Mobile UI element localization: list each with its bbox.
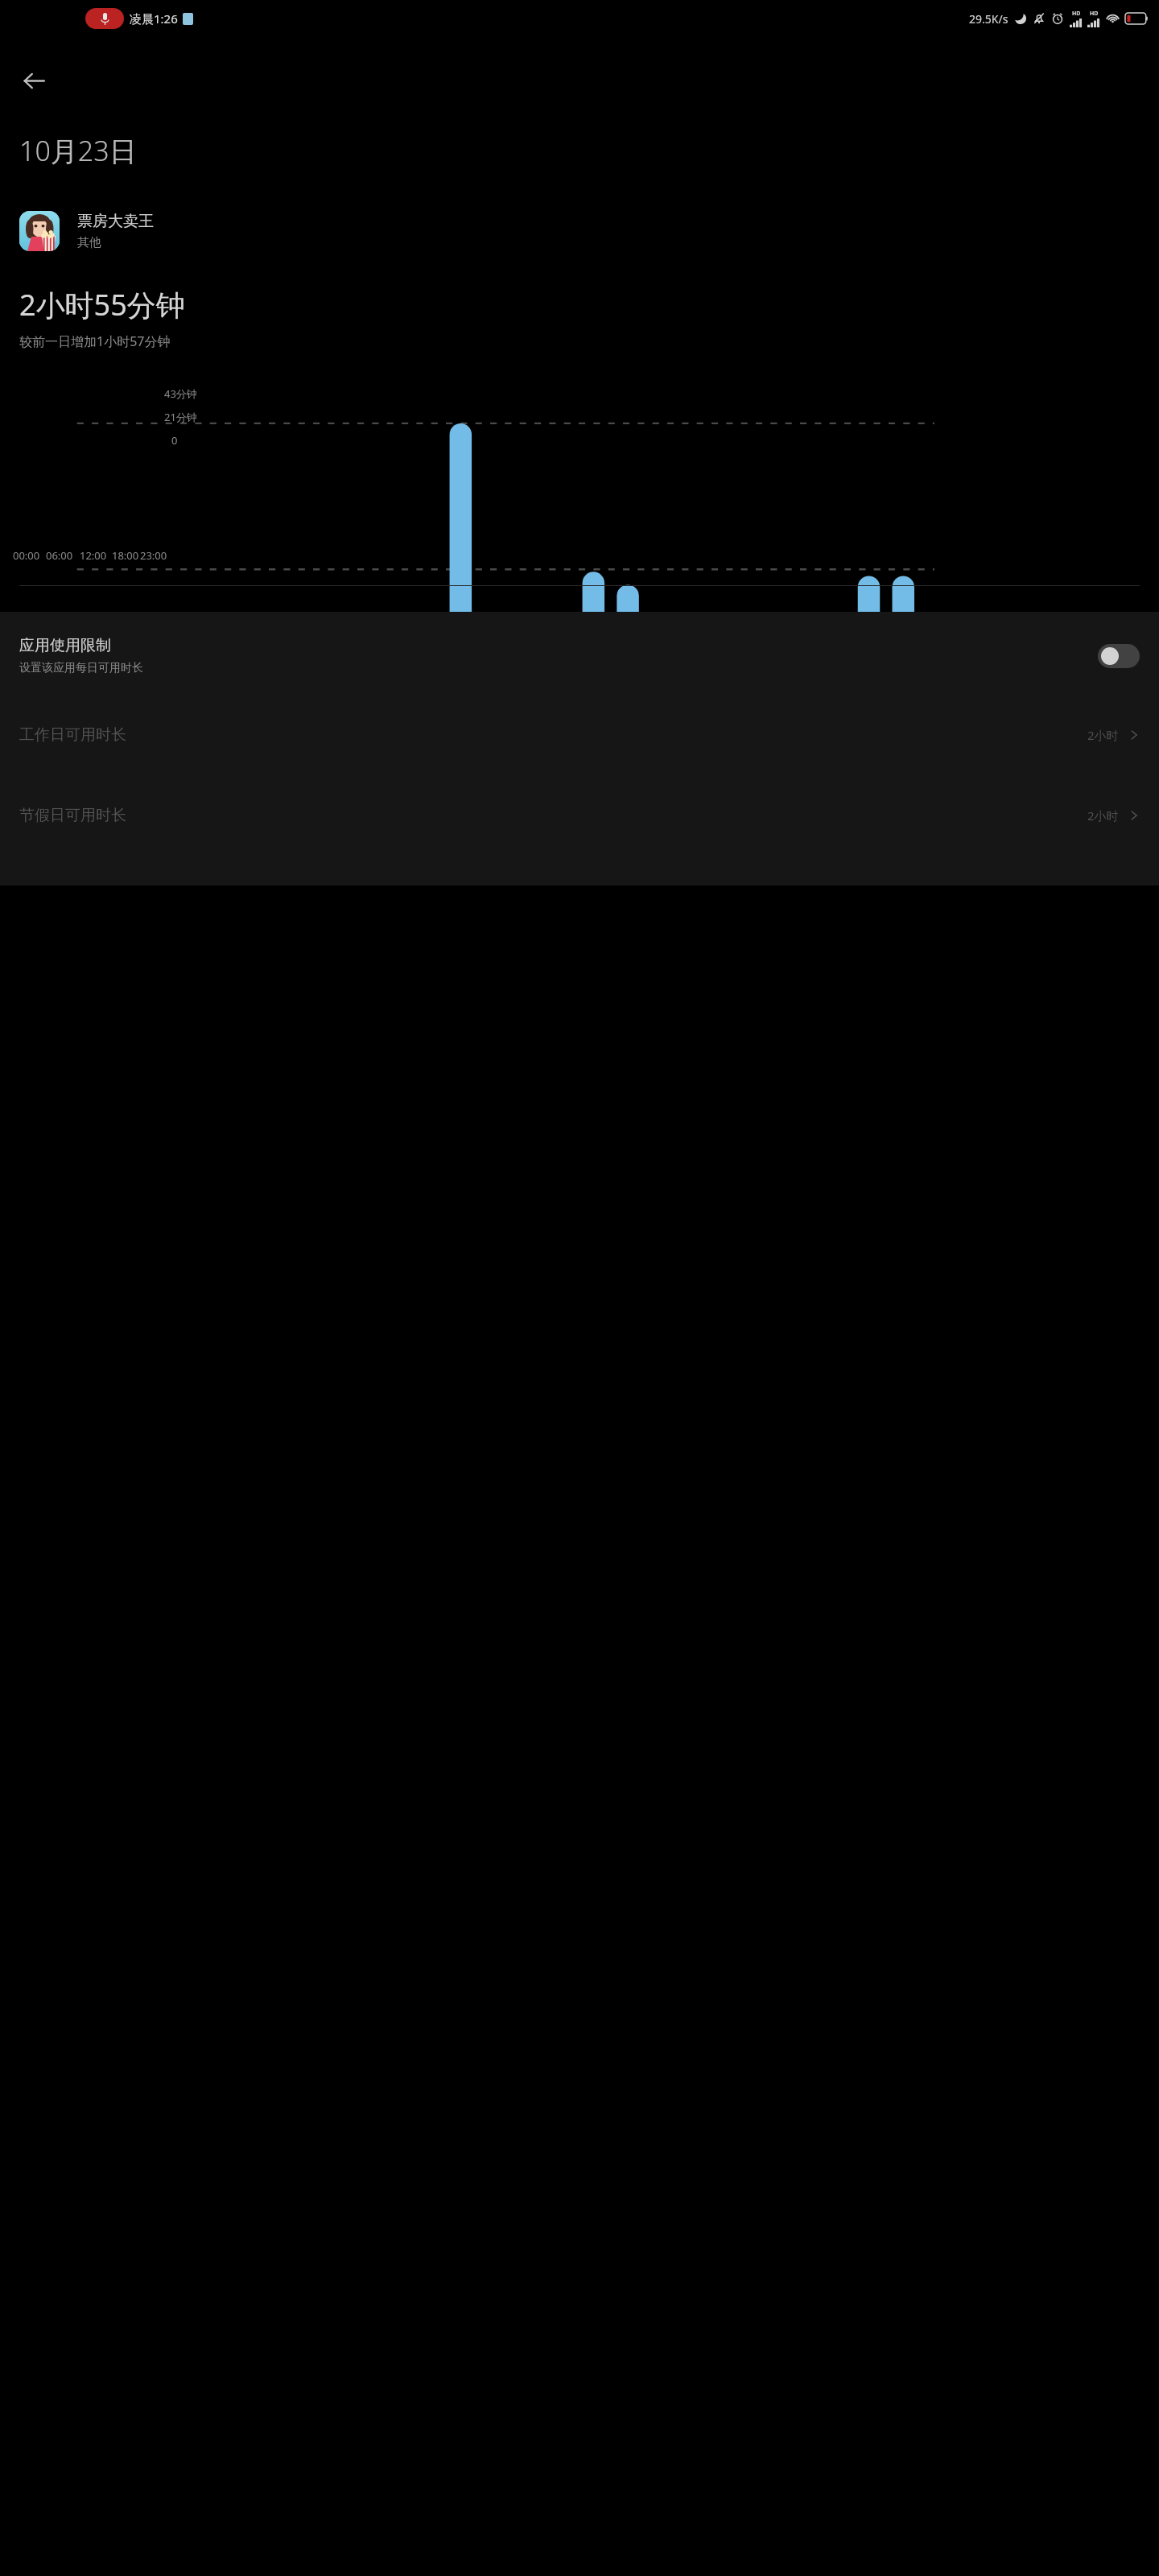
staticText: 票房大卖王 (77, 212, 154, 231)
staticText: 43分钟 (164, 386, 197, 401)
staticText: 18:00 (112, 548, 139, 563)
staticText: 凌晨1:26 (130, 10, 178, 27)
staticText: 工作日可用时长 (19, 725, 1087, 745)
button[interactable]: 工作日可用时长 (0, 695, 1159, 775)
staticText: 节假日可用时长 (19, 806, 1087, 825)
staticText: 21分钟 (164, 410, 197, 424)
staticText: 00:00 (13, 548, 40, 563)
staticText: 0 (171, 433, 178, 448)
staticText: 较前一日增加1小时57分钟 (19, 332, 171, 350)
staticText: 其他 (77, 235, 101, 250)
staticText: HD (1090, 10, 1099, 18)
button[interactable]: 票房大卖王 (0, 208, 1159, 254)
button[interactable]: 节假日可用时长 (0, 775, 1159, 856)
staticText: 2小时 (1087, 727, 1119, 743)
staticText: 2小时 (1087, 807, 1119, 824)
staticText: 06:00 (46, 548, 73, 563)
staticText: 29.5K/s (969, 11, 1008, 27)
staticText: HD (1072, 10, 1081, 18)
button[interactable]: 返回 (11, 58, 56, 103)
button[interactable]: 应用使用限制 (0, 612, 1159, 695)
button[interactable]: 应用使用限制开关 (1098, 644, 1140, 668)
staticText: 设置该应用每日可用时长 (19, 661, 143, 675)
staticText: 应用使用限制 (19, 636, 111, 655)
staticText: 12:00 (80, 548, 107, 563)
staticText: 2小时55分钟 (19, 285, 185, 324)
staticText: 23:00 (140, 548, 167, 563)
staticText: 10月23日 (19, 132, 137, 169)
